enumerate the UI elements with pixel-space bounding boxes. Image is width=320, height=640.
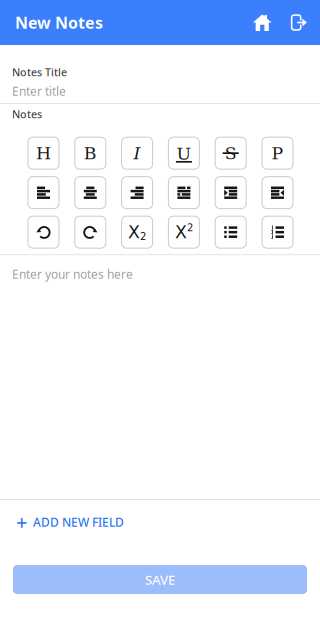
staticText: I — [134, 143, 141, 163]
staticText: Notes Title — [12, 65, 67, 79]
button[interactable]: Align left — [28, 177, 59, 209]
staticText: 2 — [187, 222, 193, 234]
button[interactable]: Align right — [122, 177, 153, 209]
button[interactable]: Underline — [168, 137, 199, 169]
button[interactable]: Italic — [122, 137, 153, 169]
staticText: U — [176, 144, 191, 164]
staticText: P — [271, 143, 283, 163]
button[interactable]: Heading — [28, 137, 59, 169]
staticText: B — [84, 143, 97, 163]
button[interactable]: Increase indent — [215, 177, 246, 209]
button[interactable]: Redo — [75, 216, 106, 248]
staticText: Enter your notes here — [12, 266, 133, 282]
staticText: X — [175, 222, 187, 242]
button[interactable]: Bold — [75, 137, 106, 169]
button[interactable]: Home — [250, 10, 274, 35]
button[interactable]: Decrease indent — [262, 177, 293, 209]
staticText: + — [16, 509, 27, 535]
staticText: SAVE — [145, 571, 175, 588]
button[interactable]: + — [0, 500, 320, 544]
button[interactable]: Undo — [28, 216, 59, 248]
staticText: H — [36, 143, 51, 163]
button[interactable]: Bulleted list — [215, 216, 246, 248]
staticText: 2 — [140, 231, 146, 242]
button[interactable]: Log out — [287, 11, 310, 34]
button[interactable]: Superscript — [168, 216, 199, 248]
button[interactable]: Numbered list — [262, 216, 293, 248]
button[interactable]: Paragraph — [262, 137, 293, 169]
staticText: ADD NEW FIELD — [33, 514, 124, 530]
staticText: New Notes — [15, 12, 103, 33]
staticText: Enter title — [12, 83, 66, 99]
button[interactable]: Subscript — [122, 216, 153, 248]
button[interactable]: Strikethrough — [215, 137, 246, 169]
staticText: X — [128, 222, 140, 242]
button[interactable]: SAVE — [13, 565, 307, 594]
staticText: S — [225, 143, 237, 163]
button[interactable]: Justify — [168, 177, 199, 209]
button[interactable]: Align center — [75, 177, 106, 209]
staticText: Notes — [12, 107, 42, 121]
